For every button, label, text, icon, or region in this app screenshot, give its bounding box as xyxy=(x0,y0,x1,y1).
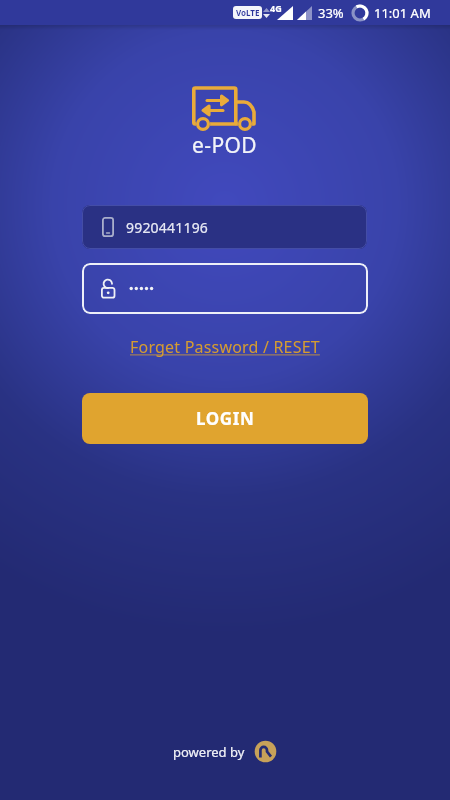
staticText: e-POD xyxy=(192,131,258,160)
staticText: LOGIN xyxy=(196,407,255,430)
staticText: VoLTE xyxy=(236,7,260,18)
button[interactable] xyxy=(82,263,368,314)
staticText: 9920441196 xyxy=(126,218,209,237)
staticText: powered by xyxy=(173,743,245,761)
button[interactable]: 9920441196 xyxy=(82,205,367,249)
staticText: Forget Password / RESET xyxy=(130,336,320,358)
staticText: 33% xyxy=(318,4,344,22)
button[interactable]: LOGIN xyxy=(82,393,368,444)
staticText: 11:01 AM xyxy=(374,4,431,22)
staticText: 4G xyxy=(270,2,282,14)
button[interactable]: Forget Password / RESET xyxy=(130,336,320,358)
